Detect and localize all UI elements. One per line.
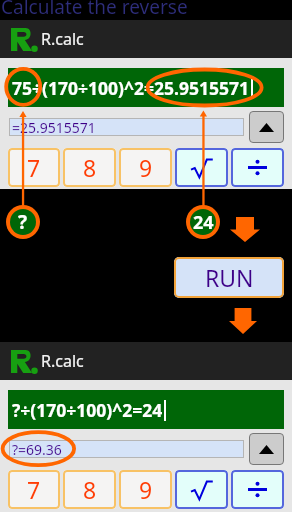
button[interactable]: 7 (8, 470, 60, 509)
button[interactable]: Divide (231, 148, 284, 187)
staticText: R.calc (41, 350, 84, 372)
button[interactable]: Collapse keypad (249, 111, 284, 143)
staticText: =25.9515571 (12, 118, 96, 136)
button[interactable]: 7 (8, 148, 60, 187)
staticText: 8 (83, 152, 97, 183)
staticText: 7 (27, 152, 41, 183)
staticText: R.calc (41, 28, 84, 50)
button[interactable]: 9 (119, 470, 172, 509)
staticText: 24 (193, 210, 214, 235)
button[interactable]: Square root (175, 470, 228, 509)
staticText: Calculate the reverse (1, 0, 188, 20)
staticText: RUN (205, 262, 254, 293)
staticText: 8 (83, 474, 97, 505)
button[interactable]: Divide (231, 470, 284, 509)
staticText: 9 (139, 474, 153, 505)
staticText: 7 (27, 474, 41, 505)
button[interactable]: 8 (63, 148, 116, 187)
staticText: 9 (139, 152, 153, 183)
staticText: ?÷(170÷100)^2=24 (12, 398, 163, 422)
staticText: ? (18, 209, 28, 235)
button[interactable]: Collapse keypad (249, 433, 284, 465)
button[interactable]: 9 (119, 148, 172, 187)
staticText: ?=69.36 (12, 440, 62, 458)
button[interactable]: Square root (175, 148, 228, 187)
staticText: 75÷(170÷100)^2=25.9515571 (12, 76, 250, 100)
button[interactable]: RUN (174, 257, 284, 298)
button[interactable]: 8 (63, 470, 116, 509)
